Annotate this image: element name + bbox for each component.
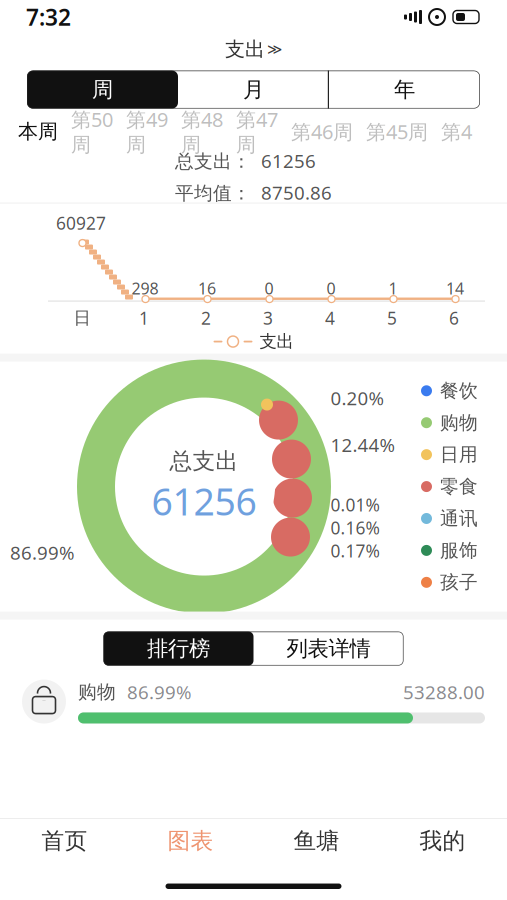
button[interactable]: 我的: [379, 819, 505, 863]
button[interactable]: 支出: [217, 34, 290, 65]
button[interactable]: 鱼塘: [253, 819, 379, 863]
staticText: 0: [264, 278, 273, 299]
staticText: 我的: [419, 827, 465, 855]
staticText: 支出: [259, 331, 293, 352]
staticText: 0: [326, 278, 335, 299]
staticText: 1: [139, 307, 149, 330]
staticText: 本周: [18, 119, 58, 144]
button[interactable]: 第4: [441, 118, 472, 145]
button[interactable]: 排行榜: [103, 632, 253, 666]
staticText: 86.99%: [127, 680, 192, 704]
button[interactable]: 第46周: [291, 118, 353, 145]
staticText: 第47周: [236, 106, 278, 157]
button[interactable]: 第47周: [236, 106, 278, 157]
staticText: 61256: [151, 476, 256, 526]
staticText: 餐饮: [440, 379, 478, 402]
staticText: 第46周: [291, 118, 353, 145]
staticText: 14: [446, 278, 464, 299]
staticText: 第45周: [366, 118, 428, 145]
staticText: 7:32: [26, 2, 71, 32]
staticText: 0.20%: [330, 386, 384, 410]
staticText: 0.17%: [330, 539, 379, 562]
staticText: 列表详情: [286, 635, 370, 662]
staticText: 298: [131, 278, 158, 299]
staticText: 支出: [225, 37, 265, 62]
staticText: 第50周: [71, 106, 113, 157]
button[interactable]: 第49周: [126, 106, 168, 157]
staticText: 2: [201, 307, 211, 330]
staticText: 月: [243, 76, 264, 103]
staticText: 服饰: [440, 539, 478, 562]
staticText: 购物: [78, 681, 116, 703]
staticText: 排行榜: [147, 635, 210, 662]
staticText: ≫: [267, 41, 282, 58]
staticText: 5: [387, 307, 397, 330]
button[interactable]: 第45周: [366, 118, 428, 145]
staticText: 年: [394, 76, 415, 103]
button[interactable]: 图表: [127, 819, 253, 863]
staticText: 通讯: [440, 507, 478, 530]
button[interactable]: 月: [178, 71, 329, 109]
staticText: 0.01%: [330, 493, 379, 516]
staticText: 总支出: [169, 447, 238, 475]
staticText: 1: [388, 278, 397, 299]
staticText: 86.99%: [10, 540, 75, 565]
staticText: 3: [263, 307, 273, 330]
button[interactable]: 第50周: [71, 106, 113, 157]
staticText: 总支出： 61256: [175, 148, 316, 173]
staticText: 孩子: [440, 571, 478, 594]
staticText: 第49周: [126, 106, 168, 157]
button[interactable]: 购物: [0, 672, 507, 732]
staticText: 零食: [440, 475, 478, 498]
staticText: 首页: [41, 827, 87, 855]
staticText: 鱼塘: [293, 827, 339, 855]
button[interactable]: 周: [27, 71, 178, 109]
staticText: 图表: [167, 827, 213, 855]
staticText: 53288.00: [403, 680, 485, 704]
staticText: 6: [449, 307, 459, 330]
staticText: 购物: [440, 411, 478, 434]
staticText: 0.16%: [330, 516, 379, 539]
staticText: 16: [198, 278, 216, 299]
button[interactable]: 首页: [1, 819, 127, 863]
staticText: 4: [325, 307, 335, 330]
staticText: 周: [92, 76, 113, 103]
staticText: 平均值： 8750.86: [175, 180, 332, 205]
staticText: 日: [73, 307, 90, 329]
staticText: 第48周: [181, 106, 223, 157]
button[interactable]: 第48周: [181, 106, 223, 157]
staticText: 12.44%: [330, 432, 395, 457]
staticText: 60927: [56, 212, 106, 235]
button[interactable]: 列表详情: [253, 632, 403, 666]
button[interactable]: 本周: [18, 119, 58, 144]
staticText: 日用: [440, 443, 478, 466]
staticText: 第4: [441, 118, 472, 145]
button[interactable]: 年: [329, 71, 480, 109]
